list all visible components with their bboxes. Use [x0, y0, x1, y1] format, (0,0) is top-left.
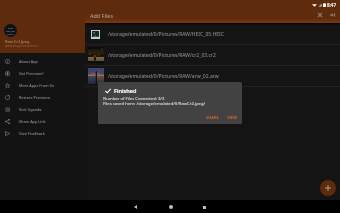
staticText: VIEW — [227, 115, 238, 121]
button[interactable]: Share App Link — [0, 115, 85, 127]
button[interactable]: More Apps From Us — [0, 79, 85, 91]
staticText: RAW — [8, 26, 14, 29]
staticText: About App — [19, 59, 38, 64]
staticText: Files saved here: /storage/emulated/0/Ra… — [103, 101, 206, 107]
staticText: More Apps From Us — [19, 83, 55, 88]
button[interactable]: Get Premium! — [0, 67, 85, 79]
button[interactable]: Convert — [326, 9, 338, 21]
button[interactable]: Clear — [314, 9, 326, 21]
staticText: CONV — [7, 32, 14, 35]
button[interactable]: /storage/emulated/0/Pictures/RAW/cr2_03.… — [0, 45, 340, 65]
staticText: SHARE — [206, 115, 219, 121]
button[interactable]: /storage/emulated/0/Pictures/RAW/HEIC_05… — [0, 24, 340, 44]
button[interactable]: Add files — [320, 180, 336, 196]
button[interactable]: SHARE — [204, 114, 221, 122]
staticText: www.imageconverter.io — [5, 44, 39, 48]
staticText: /storage/emulated/0/Pictures/RAW/HEIC_05… — [108, 31, 224, 38]
staticText: Give Feedback — [19, 131, 45, 136]
button[interactable]: Recent apps — [194, 197, 214, 213]
staticText: Number of Files Converted: 3/3 — [103, 96, 165, 102]
staticText: CR2 JPG — [6, 29, 15, 32]
staticText: Raw Cr2 Jpeg — [5, 39, 30, 44]
staticText: Add Files — [90, 12, 114, 19]
staticText: Restore Premium — [19, 95, 50, 100]
button[interactable]: Home — [161, 197, 181, 213]
staticText: Share App Link — [19, 119, 46, 124]
staticText: 8:47 — [327, 2, 337, 8]
button[interactable]: Give Feedback — [0, 127, 85, 139]
button[interactable]: Restore Premium — [0, 91, 85, 103]
staticText: Finished — [114, 87, 137, 95]
staticText: Get Premium! — [19, 71, 44, 76]
staticText: /storage/emulated/0/Pictures/RAW/arw_02.… — [108, 73, 219, 80]
staticText: Visit Uganda — [19, 107, 42, 112]
staticText: /storage/emulated/0/Pictures/RAW/cr2_03.… — [108, 52, 216, 59]
button[interactable]: Back — [125, 197, 145, 213]
button[interactable]: VIEW — [225, 114, 240, 122]
button[interactable]: /storage/emulated/0/Pictures/RAW/arw_02.… — [0, 66, 340, 86]
button[interactable]: About App — [0, 55, 85, 67]
button[interactable]: Visit Uganda — [0, 103, 85, 115]
